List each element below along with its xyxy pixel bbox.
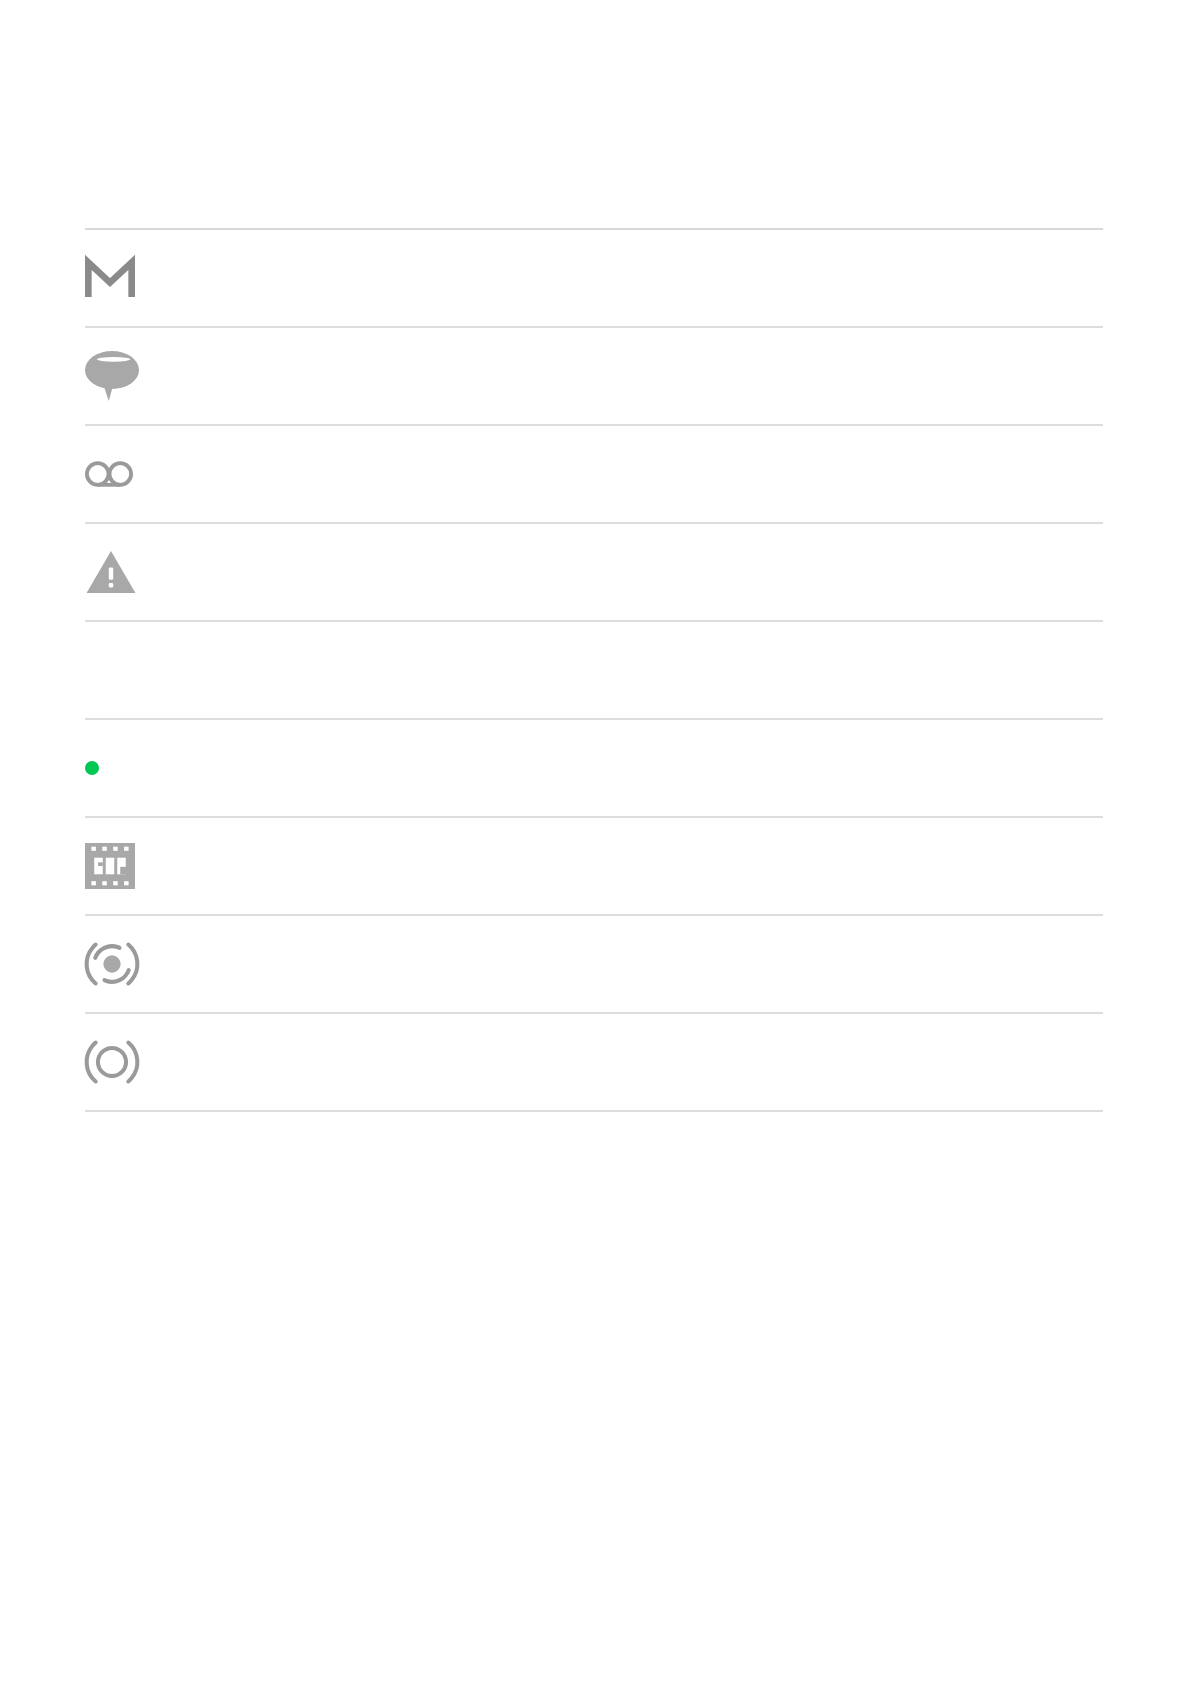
button[interactable]: Messages <box>0 328 1191 424</box>
button[interactable]: Voicemail <box>0 426 1191 522</box>
button[interactable]: GIF <box>0 818 1191 914</box>
button[interactable]: Status <box>0 720 1191 816</box>
button[interactable]: Gmail <box>0 230 1191 326</box>
button[interactable]: Broadcast <box>0 1014 1191 1110</box>
button[interactable]: Alert <box>0 524 1191 620</box>
button[interactable]: Recording <box>0 916 1191 1012</box>
